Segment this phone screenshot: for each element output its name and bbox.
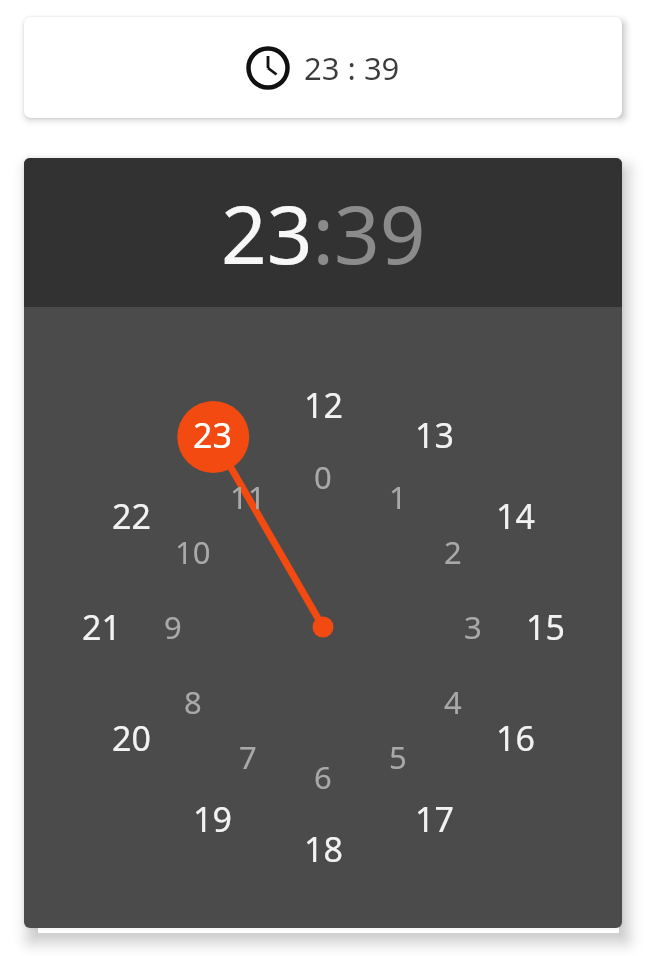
staticText: 20 (112, 715, 151, 761)
button[interactable]: 23 : 39 (24, 17, 622, 118)
button[interactable]: 1 (368, 475, 428, 519)
staticText: 19 (193, 796, 232, 842)
staticText: 13 (415, 412, 454, 458)
button[interactable]: 20 (96, 713, 166, 763)
button[interactable]: 9 (143, 605, 203, 649)
staticText: 22 (112, 493, 151, 539)
button[interactable]: 14 (480, 491, 550, 541)
staticText: 4 (444, 681, 462, 723)
staticText: 1 (389, 476, 407, 518)
staticText: 17 (415, 796, 454, 842)
button[interactable]: 3 (443, 605, 503, 649)
button[interactable]: 15 (510, 602, 580, 652)
staticText: 23 : 39 (304, 47, 400, 89)
button[interactable]: 23 (177, 410, 247, 460)
button[interactable]: 11 (218, 475, 278, 519)
staticText: 21 (82, 604, 121, 650)
staticText: 23 (193, 412, 232, 458)
button[interactable]: 5 (368, 735, 428, 779)
staticText: 14 (496, 493, 535, 539)
staticText: 8 (184, 681, 202, 723)
staticText: 15 (526, 604, 565, 650)
staticText: 16 (496, 715, 535, 761)
staticText: 6 (314, 756, 332, 798)
button[interactable]: 4 (423, 680, 483, 724)
staticText: 2 (444, 531, 462, 573)
button[interactable]: 18 (288, 824, 358, 874)
button[interactable]: 12 (288, 380, 358, 430)
staticText: 5 (389, 736, 407, 778)
button[interactable]: 19 (177, 794, 247, 844)
button[interactable]: 22 (96, 491, 166, 541)
button[interactable]: 0 (293, 455, 353, 499)
button[interactable]: 2 (423, 530, 483, 574)
button[interactable]: 17 (399, 794, 469, 844)
staticText: 3 (464, 606, 482, 648)
staticText: 18 (304, 826, 343, 872)
staticText: 9 (164, 606, 182, 648)
button[interactable]: 10 (163, 530, 223, 574)
staticText: 7 (239, 736, 257, 778)
staticText: 23:39 (221, 178, 426, 287)
button[interactable]: 13 (399, 410, 469, 460)
button[interactable]: 8 (163, 680, 223, 724)
button[interactable]: 7 (218, 735, 278, 779)
button[interactable]: 21 (66, 602, 136, 652)
staticText: 12 (304, 382, 343, 428)
staticText: 11 (230, 476, 266, 518)
button[interactable]: 16 (480, 713, 550, 763)
button[interactable]: 6 (293, 755, 353, 799)
staticText: 0 (314, 456, 332, 498)
staticText: 10 (175, 531, 211, 573)
